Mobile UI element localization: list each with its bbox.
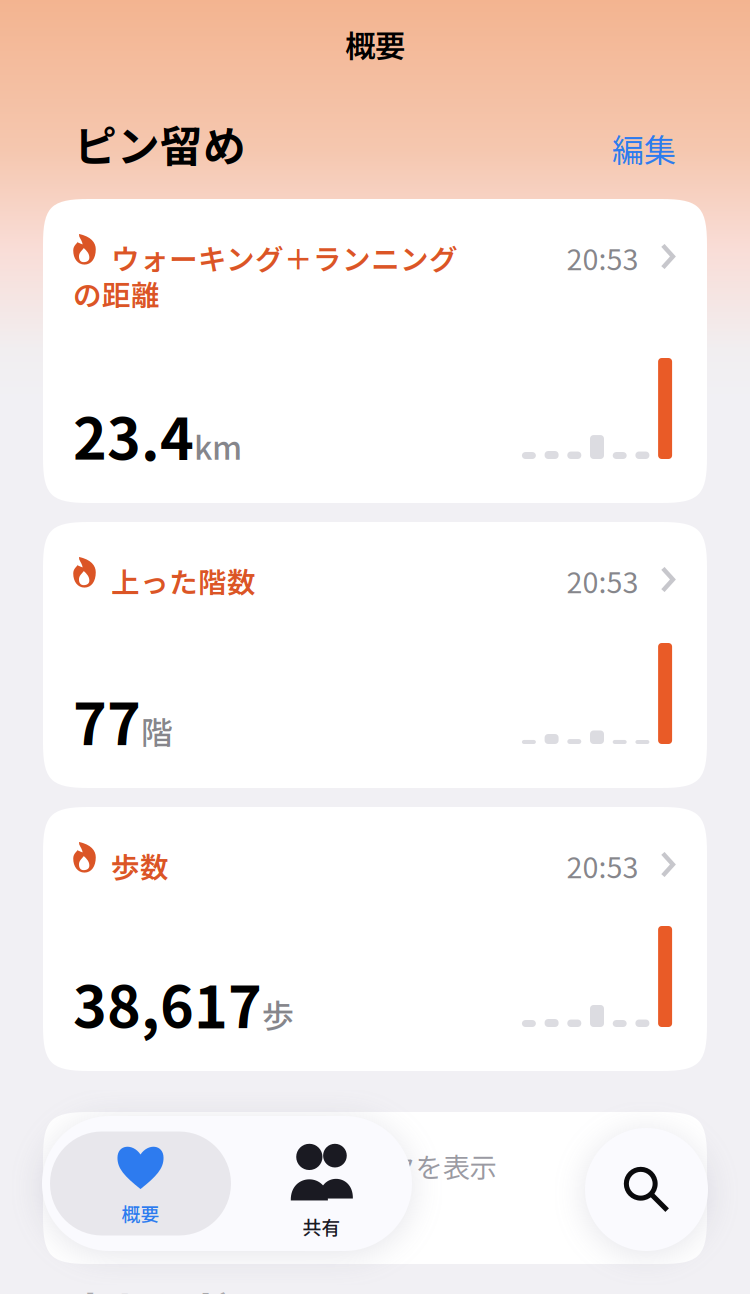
- staticText: ウォーキング＋ランニング: [111, 237, 458, 278]
- staticText: 概要: [345, 22, 405, 66]
- button[interactable]: 概要: [42, 1131, 231, 1235]
- staticText: 共有: [302, 1213, 340, 1240]
- staticText: 20:53: [566, 237, 638, 278]
- staticText: 上った階数: [111, 560, 256, 601]
- button[interactable]: 編集: [612, 125, 676, 171]
- staticText: ピン留め: [74, 113, 246, 174]
- button[interactable]: ここにデータを表示: [43, 1112, 707, 1264]
- button[interactable]: 検索: [585, 1128, 708, 1251]
- staticText: 38,617: [73, 962, 262, 1045]
- staticText: 20:53: [566, 560, 638, 601]
- staticText: 概要: [121, 1199, 159, 1226]
- staticText: 歩: [262, 991, 294, 1037]
- staticText: 77: [73, 679, 141, 762]
- staticText: 編集: [612, 125, 676, 171]
- staticText: 23.4: [73, 394, 194, 477]
- staticText: 歩数: [111, 845, 169, 886]
- staticText: km: [194, 423, 242, 469]
- staticText: 20:53: [566, 845, 638, 886]
- button[interactable]: 歩数: [43, 807, 707, 1071]
- staticText: 階: [141, 708, 173, 754]
- button[interactable]: 上った階数: [43, 522, 707, 788]
- button[interactable]: ウォーキング＋ランニング: [43, 199, 707, 503]
- staticText: トレンド: [75, 1278, 231, 1294]
- staticText: ここにデータを表示: [253, 1146, 496, 1186]
- button[interactable]: 共有: [231, 1132, 412, 1235]
- staticText: の距離: [73, 273, 160, 314]
